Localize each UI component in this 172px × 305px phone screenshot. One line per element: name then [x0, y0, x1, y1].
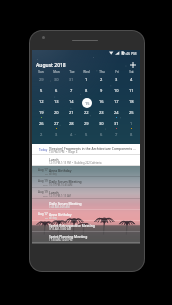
button[interactable]: 7	[64, 86, 79, 97]
button[interactable]: 1	[79, 75, 94, 86]
button[interactable]: 3	[49, 130, 64, 141]
button[interactable]: 24	[109, 108, 124, 119]
button[interactable]: 21	[64, 108, 79, 119]
button[interactable]: 23	[94, 108, 109, 119]
button[interactable]: 15	[79, 97, 94, 108]
staticText: Sun	[43, 194, 48, 197]
button[interactable]: 10	[109, 86, 124, 97]
button[interactable]: 29	[79, 119, 94, 130]
staticText: 1:45 AM-5:00 AM	[49, 205, 70, 209]
staticText: 30	[99, 121, 104, 126]
button[interactable]: Sprint Retrospective Meeting	[32, 221, 140, 232]
staticText: 5	[40, 88, 43, 93]
button[interactable]: 14	[64, 97, 79, 108]
button[interactable]: 8	[79, 86, 94, 97]
staticText: 17	[114, 99, 119, 104]
button[interactable]: 22	[79, 108, 94, 119]
button[interactable]: 25	[124, 108, 139, 119]
button[interactable]: 13	[49, 97, 64, 108]
staticText: 26	[39, 121, 44, 126]
button[interactable]: 11	[124, 86, 139, 97]
button[interactable]: Daily Scrum Meeting	[32, 199, 140, 210]
staticText: Wed	[83, 70, 90, 74]
staticText: Thu	[99, 70, 105, 74]
staticText: 21	[69, 110, 74, 115]
staticText: August 2018	[36, 62, 66, 69]
staticText: Daily Scrum Meeting	[49, 201, 82, 205]
button[interactable]: 6	[94, 130, 109, 141]
button[interactable]: Aug 17	[32, 210, 140, 221]
staticText: 11	[129, 88, 134, 93]
button[interactable]: 5	[33, 86, 49, 97]
button[interactable]: 26	[33, 119, 49, 130]
staticText: 9:15 AM-10:00 AM	[49, 227, 71, 231]
staticText: Lunch	[49, 157, 59, 161]
button[interactable]: Today	[32, 144, 140, 155]
button[interactable]: 17	[109, 97, 124, 108]
button[interactable]: 28	[64, 119, 79, 130]
staticText: Anna Birthday	[49, 168, 72, 172]
button[interactable]: 12	[33, 97, 49, 108]
button[interactable]: 31	[64, 75, 79, 86]
staticText: 13	[54, 99, 59, 104]
staticText: 29	[39, 77, 44, 82]
staticText: 22	[84, 110, 89, 115]
staticText: 12:15 PM-1:15 PM • Building 222 Cafeteri…	[49, 161, 102, 165]
button[interactable]: 1	[124, 119, 139, 130]
button[interactable]: 19	[33, 108, 49, 119]
button[interactable]: Aug 19	[32, 188, 140, 199]
staticText: 6	[55, 88, 58, 93]
button[interactable]: Lunch	[32, 155, 140, 166]
staticText: 12	[39, 99, 44, 104]
staticText: Aug 19	[38, 179, 48, 183]
staticText: 12:15 PM-1:15 AM	[49, 194, 71, 198]
button[interactable]: Aug 17	[32, 166, 140, 177]
button[interactable]: 9	[94, 86, 109, 97]
staticText: Lunch	[49, 190, 59, 194]
button[interactable]: Aug 19	[32, 177, 140, 188]
staticText: all day	[49, 216, 57, 220]
staticText: 30	[54, 77, 59, 82]
staticText: all day	[49, 172, 57, 176]
staticText: 15	[85, 101, 90, 106]
button[interactable]: 29	[33, 75, 49, 86]
staticText: 29	[84, 121, 89, 126]
staticText: Sun	[43, 183, 48, 186]
button[interactable]: 4	[64, 130, 79, 141]
button[interactable]: 18	[124, 97, 139, 108]
button[interactable]: 2	[94, 75, 109, 86]
staticText: 16	[99, 99, 104, 104]
button[interactable]: 16	[94, 97, 109, 108]
staticText: 28	[69, 121, 74, 126]
staticText: 20	[54, 110, 59, 115]
button[interactable]: 4	[124, 75, 139, 86]
button[interactable]: 31	[109, 119, 124, 130]
staticText: 2	[40, 132, 43, 137]
staticText: Fri	[45, 216, 48, 219]
button[interactable]: 6	[49, 86, 64, 97]
staticText: 25	[129, 110, 134, 115]
staticText: 7-8 PM/3 PM • Stage II	[49, 150, 78, 154]
button[interactable]: 3	[109, 75, 124, 86]
button[interactable]: Add event	[128, 60, 138, 70]
staticText: 3	[115, 77, 118, 82]
button[interactable]: 30	[49, 75, 64, 86]
staticText: 7	[115, 132, 118, 137]
button[interactable]: 8	[124, 130, 139, 141]
staticText: 3	[55, 132, 58, 137]
staticText: 4	[130, 77, 133, 82]
button[interactable]: 20	[49, 108, 64, 119]
button[interactable]: 2	[33, 130, 49, 141]
staticText: Daily Scrum Meeting	[49, 179, 82, 183]
staticText: 31	[69, 77, 74, 82]
button[interactable]: 30	[94, 119, 109, 130]
button[interactable]: 27	[49, 119, 64, 130]
button[interactable]: 7	[109, 130, 124, 141]
button[interactable]: Sprint Planning Meeting	[32, 232, 140, 243]
staticText: 7:46 PM	[123, 51, 137, 56]
staticText: 11:30 AM-12:00 PM	[49, 238, 73, 242]
button[interactable]: 5	[79, 130, 94, 141]
staticText: 10:15 PM-10:45 AM	[49, 183, 73, 187]
staticText: 8	[130, 132, 133, 137]
staticText: 14	[69, 99, 74, 104]
